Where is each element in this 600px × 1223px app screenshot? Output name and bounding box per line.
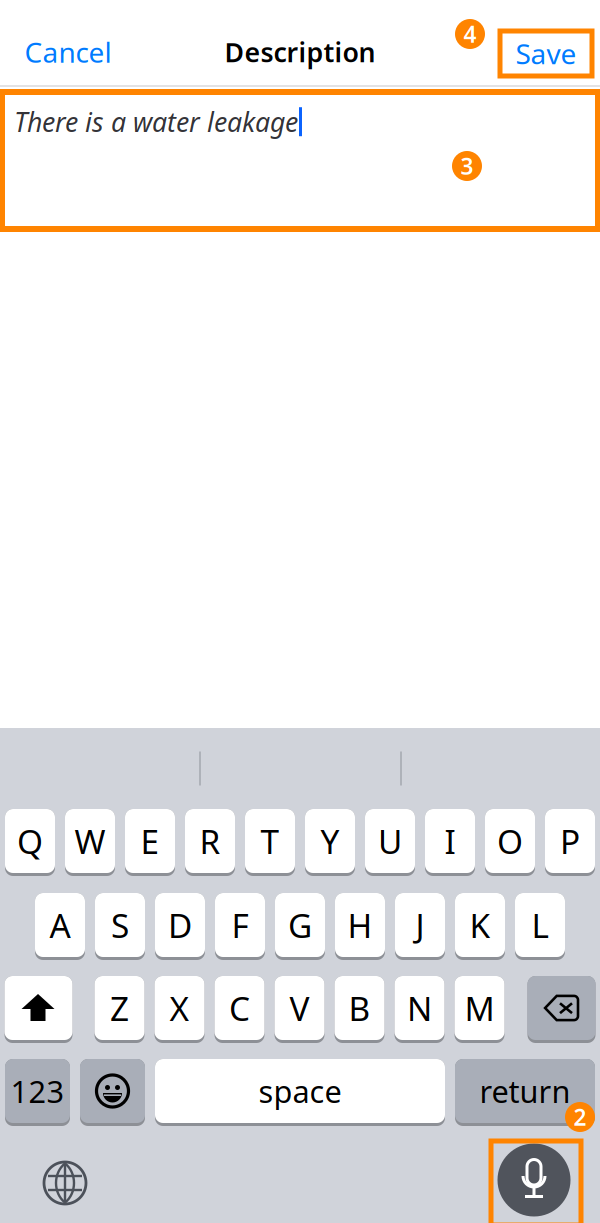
staticText: D [168, 903, 192, 947]
staticText: Z [110, 986, 129, 1030]
staticText: 2 [573, 1102, 586, 1132]
button[interactable]: S [95, 893, 145, 960]
staticText: R [199, 819, 220, 863]
staticText: A [49, 903, 70, 947]
staticText: Save [515, 35, 576, 72]
button[interactable]: L [515, 893, 565, 960]
button[interactable]: Z [94, 976, 144, 1043]
button[interactable]: Cancel [13, 22, 123, 82]
staticText: W [74, 819, 105, 863]
button[interactable]: R [185, 809, 235, 876]
staticText: 123 [10, 1071, 64, 1111]
staticText: U [378, 819, 402, 863]
staticText: M [464, 986, 494, 1030]
staticText: K [469, 903, 490, 947]
button[interactable]: return [455, 1059, 595, 1126]
staticText: L [531, 903, 548, 947]
button[interactable]: N [394, 976, 444, 1043]
staticText: return [479, 1071, 570, 1111]
staticText: O [497, 819, 523, 863]
button[interactable]: J [395, 893, 445, 960]
staticText: X [169, 986, 189, 1030]
button[interactable]: X [154, 976, 204, 1043]
button[interactable]: T [245, 809, 295, 876]
staticText: P [560, 819, 580, 863]
staticText: F [231, 903, 248, 947]
staticText: V [289, 986, 309, 1030]
button[interactable]: C [214, 976, 264, 1043]
button[interactable]: B [334, 976, 384, 1043]
staticText: space [258, 1071, 341, 1111]
button[interactable]: V [274, 976, 324, 1043]
staticText: G [288, 903, 312, 947]
button[interactable]: Delete [527, 976, 595, 1043]
staticText: Description [224, 34, 375, 70]
button[interactable]: G [275, 893, 325, 960]
staticText: 4 [463, 19, 476, 49]
button[interactable]: K [455, 893, 505, 960]
staticText: S [111, 903, 129, 947]
staticText: T [260, 819, 279, 863]
staticText: 3 [460, 151, 473, 181]
staticText: N [407, 986, 432, 1030]
button[interactable]: 123 [5, 1059, 70, 1126]
staticText: There is a water leakage [14, 104, 298, 139]
button[interactable]: F [215, 893, 265, 960]
button[interactable]: Emoji [80, 1059, 145, 1126]
button[interactable]: O [485, 809, 535, 876]
button[interactable]: W [65, 809, 115, 876]
button[interactable]: Next keyboard [37, 1155, 93, 1211]
button[interactable]: Dictation [491, 1141, 581, 1223]
button[interactable]: space [155, 1059, 445, 1126]
staticText: J [415, 903, 424, 947]
staticText: Y [320, 819, 339, 863]
button[interactable]: H [335, 893, 385, 960]
button[interactable]: U [365, 809, 415, 876]
button[interactable]: Save [500, 31, 592, 76]
button[interactable]: Shift [4, 976, 72, 1043]
staticText: E [140, 819, 159, 863]
button[interactable]: Q [5, 809, 55, 876]
staticText: Cancel [24, 33, 111, 71]
staticText: B [348, 986, 370, 1030]
button[interactable]: A [35, 893, 85, 960]
button[interactable]: E [125, 809, 175, 876]
staticText: I [444, 819, 455, 863]
button[interactable]: P [545, 809, 595, 876]
staticText: Q [17, 819, 43, 863]
button[interactable]: Y [305, 809, 355, 876]
button[interactable]: M [454, 976, 504, 1043]
button[interactable]: I [425, 809, 475, 876]
staticText: C [229, 986, 250, 1030]
staticText: H [347, 903, 372, 947]
button[interactable]: D [155, 893, 205, 960]
